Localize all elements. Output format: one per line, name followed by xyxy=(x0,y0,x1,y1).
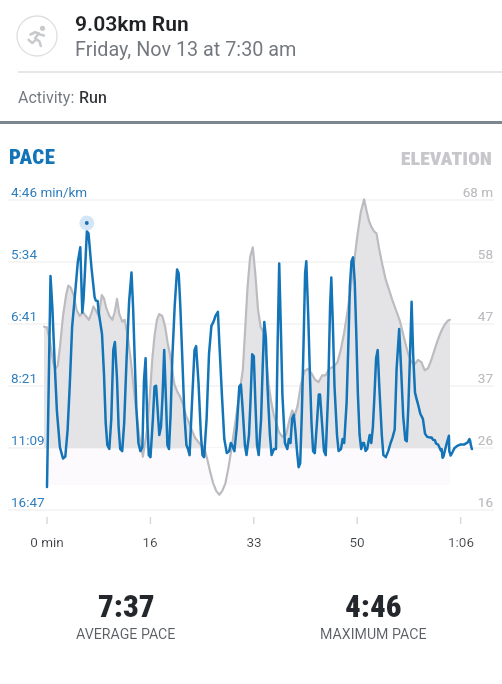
staticText: 68 m xyxy=(380,184,493,200)
button[interactable]: Activity: xyxy=(18,73,502,121)
staticText: 26 xyxy=(380,432,493,448)
staticText: 7:37 xyxy=(98,588,155,624)
staticText: 4:46 min/km xyxy=(11,184,88,200)
staticText: MAXIMUM PACE xyxy=(320,626,427,643)
staticText: 33 xyxy=(210,534,298,550)
staticText: 0 min xyxy=(4,534,91,550)
staticText: 9.03km Run xyxy=(75,12,189,37)
staticText: 16 xyxy=(106,534,194,550)
staticText: 16 xyxy=(380,494,493,510)
staticText: ELEVATION xyxy=(200,147,492,170)
button[interactable]: 7:37 xyxy=(31,588,221,643)
staticText: 8:21 xyxy=(11,370,38,386)
staticText: PACE xyxy=(9,145,56,170)
staticText: 58 xyxy=(380,246,493,262)
staticText: 16:47 xyxy=(11,494,45,510)
staticText: Friday, Nov 13 at 7:30 am xyxy=(75,38,297,61)
staticText: 5:34 xyxy=(11,246,38,262)
staticText: AVERAGE PACE xyxy=(76,626,176,643)
staticText: 11:09 xyxy=(11,432,45,448)
staticText: 6:41 xyxy=(11,308,38,324)
staticText: Run xyxy=(79,88,107,107)
staticText: 50 xyxy=(313,534,401,550)
staticText: 1:06 xyxy=(417,534,498,550)
staticText: Activity: xyxy=(18,88,79,107)
button[interactable]: 4:46 xyxy=(278,588,468,643)
staticText: 4:46 xyxy=(345,588,402,624)
staticText: 37 xyxy=(380,370,493,386)
staticText: 47 xyxy=(380,308,493,324)
button[interactable]: 9.03km Run xyxy=(16,0,502,72)
